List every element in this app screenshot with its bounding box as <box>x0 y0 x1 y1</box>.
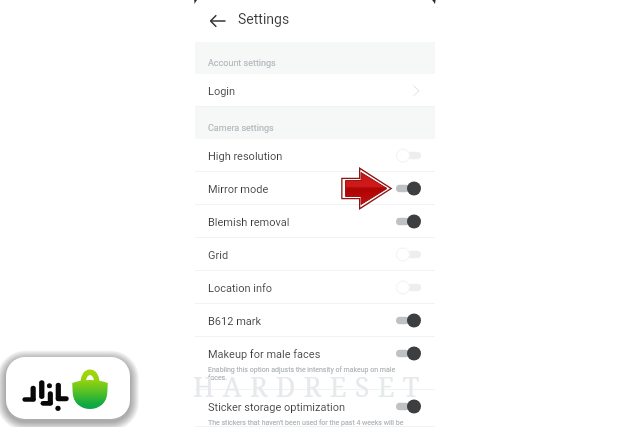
staticText: Mirror mode <box>208 183 269 196</box>
button[interactable]: Blemish removal <box>195 205 435 238</box>
staticText: B612 mark <box>208 315 262 328</box>
button[interactable]: Location info <box>195 271 435 304</box>
staticText: Settings <box>238 11 290 27</box>
staticText: Login <box>208 85 236 98</box>
button[interactable]: Mirror mode <box>195 172 435 205</box>
button[interactable]: B612 mark <box>195 304 435 337</box>
button[interactable]: High resolution <box>195 139 435 172</box>
button[interactable]: Bazaar <box>6 357 130 419</box>
staticText: Blemish removal <box>208 216 290 229</box>
staticText: Location info <box>208 282 273 295</box>
button[interactable]: Makeup for male faces <box>195 337 435 390</box>
staticText: Grid <box>208 249 229 262</box>
staticText: Enabling this option adjusts the intensi… <box>208 366 396 374</box>
staticText: The stickers that haven't been used for … <box>208 419 404 427</box>
button[interactable]: Sticker storage optimization <box>195 390 435 427</box>
button[interactable]: Grid <box>195 238 435 271</box>
staticText: High resolution <box>208 150 283 163</box>
button[interactable]: Back <box>204 7 232 35</box>
staticText: Makeup for male faces <box>208 348 321 361</box>
staticText: Camera settings <box>208 123 274 134</box>
staticText: Account settings <box>208 58 276 69</box>
staticText: faces. <box>208 374 228 382</box>
button[interactable]: Login <box>195 74 435 107</box>
staticText: Sticker storage optimization <box>208 401 346 414</box>
